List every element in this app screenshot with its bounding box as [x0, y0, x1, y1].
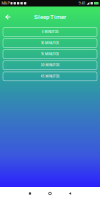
button[interactable]: Home: [44, 187, 56, 200]
staticText: 30 MINUTOS: [40, 63, 59, 67]
staticText: 45 MINUTOS: [40, 74, 59, 78]
staticText: Sleep Timer: [34, 13, 66, 21]
button[interactable]: Recent apps: [24, 187, 36, 200]
staticText: 15 MINUTOS: [41, 52, 59, 56]
button[interactable]: 10 MINUTOS: [3, 39, 97, 47]
staticText: 10 MINUTOS: [41, 41, 59, 45]
staticText: 9:41: [78, 1, 85, 5]
button[interactable]: 45 MINUTOS: [3, 72, 97, 81]
button[interactable]: Back: [64, 187, 76, 200]
button[interactable]: 15 MINUTOS: [3, 50, 97, 59]
staticText: MAP: [1, 1, 9, 5]
staticText: 5 MINUTOS: [41, 30, 58, 34]
button[interactable]: 5 MINUTOS: [3, 27, 97, 36]
button[interactable]: Back: [0, 6, 15, 27]
button[interactable]: 30 MINUTOS: [3, 61, 97, 70]
